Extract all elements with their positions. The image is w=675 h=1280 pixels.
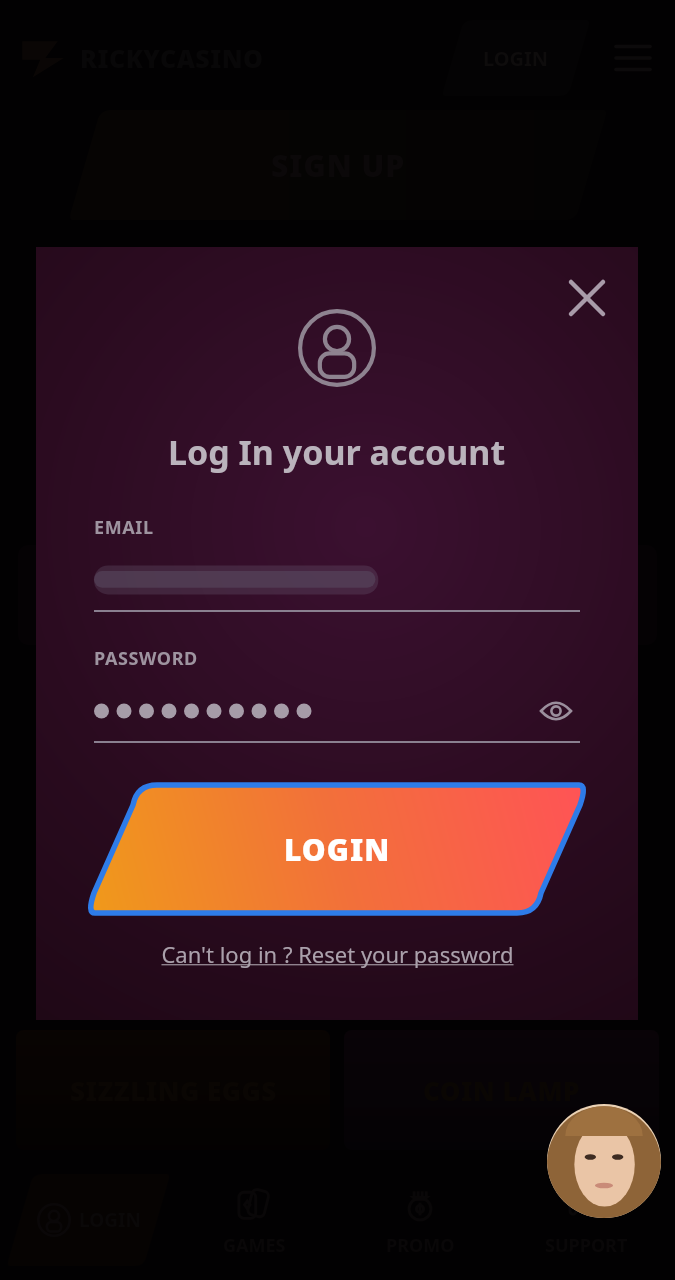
staticText: PASSWORD bbox=[94, 646, 198, 671]
button[interactable]: SUPPORT bbox=[503, 1160, 669, 1280]
button[interactable]: COIN LAMP bbox=[344, 1030, 659, 1150]
button[interactable] bbox=[94, 560, 580, 600]
staticText: Log In your account bbox=[168, 429, 506, 475]
button[interactable]: Show password bbox=[94, 691, 580, 731]
button[interactable]: Support chat bbox=[547, 1104, 661, 1218]
button[interactable]: Close bbox=[560, 271, 614, 325]
staticText: Can't log in ? Reset your password bbox=[161, 939, 514, 969]
button[interactable]: Can't log in ? Reset your password bbox=[151, 933, 524, 975]
button[interactable]: Menu bbox=[611, 36, 655, 80]
staticText: EMAIL bbox=[94, 515, 154, 540]
button[interactable] bbox=[0, 0, 675, 1280]
staticText: LOGIN bbox=[483, 45, 549, 72]
button[interactable]: Show password bbox=[532, 691, 580, 731]
button[interactable]: LOGIN bbox=[87, 785, 587, 913]
staticText: LOGIN bbox=[284, 829, 391, 870]
